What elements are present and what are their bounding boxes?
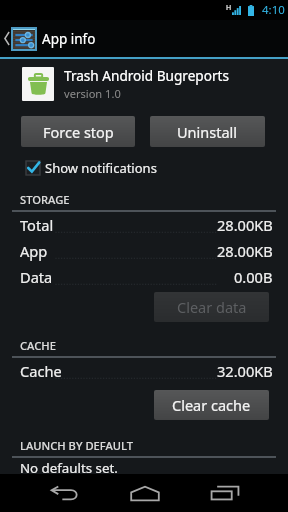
staticText: LAUNCH BY DEFAULT <box>20 438 134 453</box>
staticText: App <box>20 241 48 261</box>
staticText: Trash Android Bugreports <box>64 66 229 85</box>
button[interactable]: Recent apps <box>199 474 251 512</box>
staticText: Cache <box>20 361 62 381</box>
button[interactable]: Show notifications <box>26 159 288 177</box>
staticText: H <box>226 3 232 13</box>
staticText: STORAGE <box>20 192 70 207</box>
staticText: 4:10 <box>262 2 285 18</box>
button[interactable]: Force stop <box>21 116 135 147</box>
button[interactable]: Clear cache <box>154 390 269 420</box>
button[interactable]: Clear data <box>154 292 269 322</box>
staticText: 28.00KB <box>217 241 273 261</box>
staticText: App info <box>42 30 96 48</box>
staticText: Data <box>20 267 53 287</box>
button[interactable]: Home <box>119 474 171 512</box>
staticText: 28.00KB <box>217 215 273 235</box>
staticText: No defaults set. <box>20 459 118 477</box>
staticText: Uninstall <box>177 122 238 142</box>
staticText: Show notifications <box>45 159 157 177</box>
staticText: Force stop <box>43 122 114 142</box>
button[interactable]: Navigate up <box>0 20 288 57</box>
staticText: Clear cache <box>172 395 251 415</box>
staticText: CACHE <box>20 338 56 353</box>
button[interactable]: Back <box>38 474 90 512</box>
button[interactable]: Uninstall <box>150 116 265 147</box>
staticText: 0.00B <box>234 267 273 287</box>
staticText: 32.00KB <box>217 361 273 381</box>
staticText: Total <box>20 215 54 235</box>
staticText: Clear data <box>177 297 247 317</box>
staticText: version 1.0 <box>64 86 121 101</box>
